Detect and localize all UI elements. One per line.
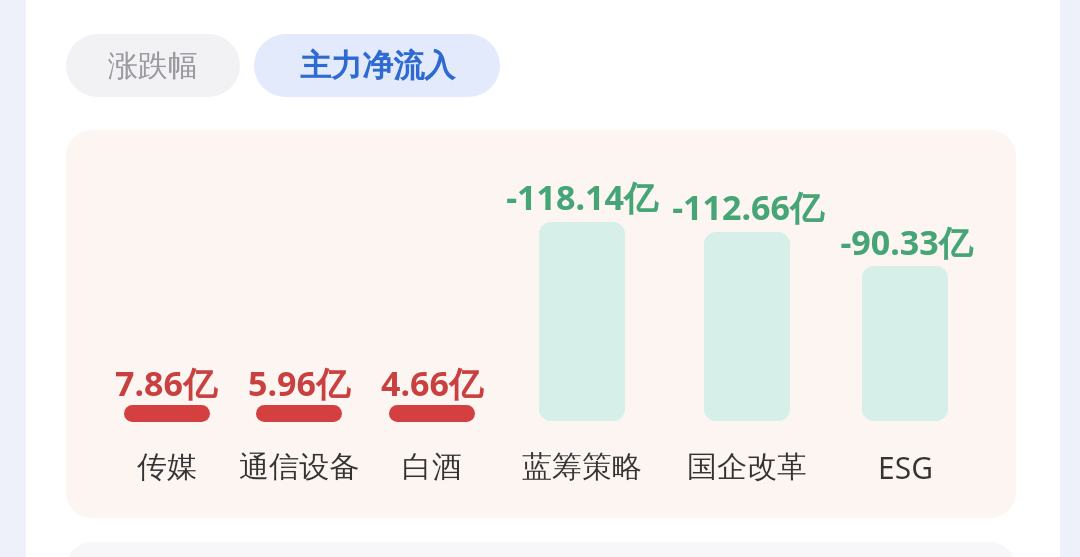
staticText: 通信设备 (239, 448, 359, 486)
staticText: 5.96亿 (248, 360, 350, 406)
staticText: 7.86亿 (115, 360, 217, 406)
staticText: -118.14亿 (506, 174, 658, 220)
staticText: 涨跌幅 (108, 47, 198, 85)
staticText: -112.66亿 (672, 184, 824, 230)
staticText: ESG (878, 447, 933, 488)
button[interactable] (66, 130, 1016, 518)
staticText: 国企改革 (687, 448, 807, 486)
button[interactable]: 主力净流入 (254, 34, 500, 97)
button[interactable]: 涨跌幅 (66, 34, 240, 97)
staticText: 传媒 (137, 448, 197, 486)
staticText: 蓝筹策略 (522, 448, 642, 486)
staticText: 白酒 (402, 448, 462, 486)
staticText: 4.66亿 (381, 360, 483, 406)
staticText: 主力净流入 (300, 46, 455, 85)
staticText: -90.33亿 (840, 219, 973, 265)
